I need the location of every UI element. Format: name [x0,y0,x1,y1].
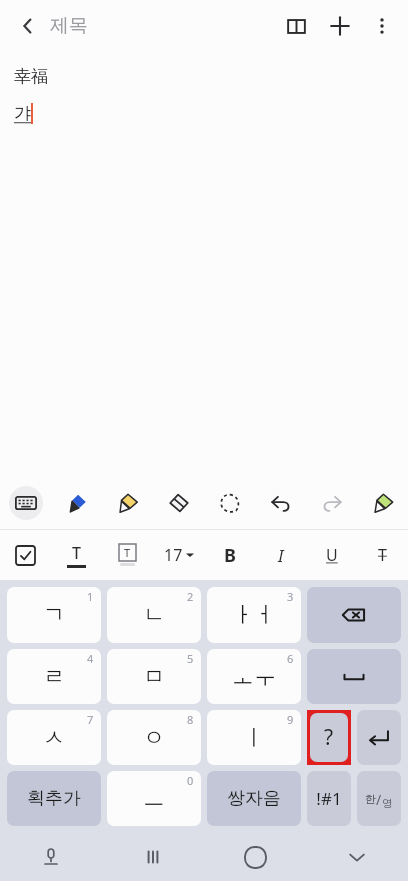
button[interactable]: ㅁ [107,649,201,704]
button[interactable]: Redo [306,477,357,529]
button[interactable]: Voice input [0,833,102,881]
button[interactable]: ㅇ [107,710,201,765]
staticText: ㄹ [43,663,65,691]
button[interactable]: Selection [204,477,255,529]
button[interactable]: ? [310,713,348,762]
button[interactable]: Space [307,649,401,704]
button[interactable]: 획추가 [7,771,101,826]
button[interactable]: Checklist [0,530,51,580]
staticText: 3 [287,589,294,604]
staticText: / [376,790,382,809]
button[interactable]: Home [204,833,306,881]
staticText: I [278,544,284,567]
button[interactable]: ㄱ [7,587,101,643]
button[interactable]: ㅗㅜ [207,649,301,704]
staticText: 1 [87,589,94,604]
staticText: ㅡ [143,785,165,813]
staticText: 9 [287,712,294,727]
staticText: B [224,543,236,568]
button[interactable]: Backspace [307,587,401,643]
staticText: ㄴ [143,601,165,629]
staticText: !#1 [316,787,342,810]
staticText: ㅗㅜ [232,663,276,691]
button[interactable]: 17 [153,530,204,580]
staticText: 갸 [14,103,31,124]
button[interactable]: Back [6,4,50,48]
staticText: ㅏㅓ [232,601,276,629]
button[interactable]: Eraser [153,477,204,529]
staticText: T [72,542,81,564]
staticText: ㅣ [243,724,265,752]
button[interactable]: Text color [51,530,102,580]
button[interactable]: Color pen [357,477,408,529]
button[interactable]: ㅏㅓ [207,587,301,643]
button[interactable]: More options [362,6,402,46]
staticText: ㅇ [143,724,165,752]
button[interactable]: 한 [357,771,401,826]
button[interactable]: Add [318,4,362,48]
staticText: 획추가 [27,787,81,810]
staticText: 제목 [50,14,88,38]
staticText: 17 [164,544,183,566]
button[interactable]: Hide keyboard [306,833,408,881]
button[interactable]: Undo [255,477,306,529]
staticText: 7 [87,712,94,727]
button[interactable]: !#1 [307,771,351,826]
button[interactable]: Highlighter [102,477,153,529]
button[interactable]: ㅣ [207,710,301,765]
button[interactable]: 쌍자음 [207,771,301,826]
button[interactable]: ㅡ [107,771,201,826]
staticText: 4 [87,651,94,666]
button[interactable]: ㅅ [7,710,101,765]
staticText: 5 [187,651,194,666]
staticText: 2 [187,589,194,604]
button[interactable]: View mode [274,4,318,48]
staticText: U [326,544,338,566]
staticText: ㅁ [143,663,165,691]
button[interactable]: Enter [357,710,401,765]
button[interactable]: Keyboard [0,477,51,529]
staticText: 幸福 [14,66,48,87]
staticText: 한 [365,792,376,806]
staticText: T [378,544,387,566]
button[interactable]: Italic [255,530,306,580]
staticText: 0 [187,773,194,788]
staticText: 쌍자음 [227,787,281,810]
staticText: ? [324,723,334,752]
button[interactable]: ㄹ [7,649,101,704]
staticText: T [124,545,131,560]
staticText: ㅅ [43,724,65,752]
staticText: 6 [287,651,294,666]
button[interactable]: Text highlight [102,530,153,580]
button[interactable]: Underline [306,530,357,580]
button[interactable]: Strikethrough [357,530,408,580]
staticText: 영 [382,796,393,810]
button[interactable]: ㄴ [107,587,201,643]
staticText: 8 [187,712,194,727]
button[interactable]: Recents [102,833,204,881]
button[interactable]: Bold [204,530,255,580]
button[interactable]: Pen [51,477,102,529]
staticText: ㄱ [43,601,65,629]
